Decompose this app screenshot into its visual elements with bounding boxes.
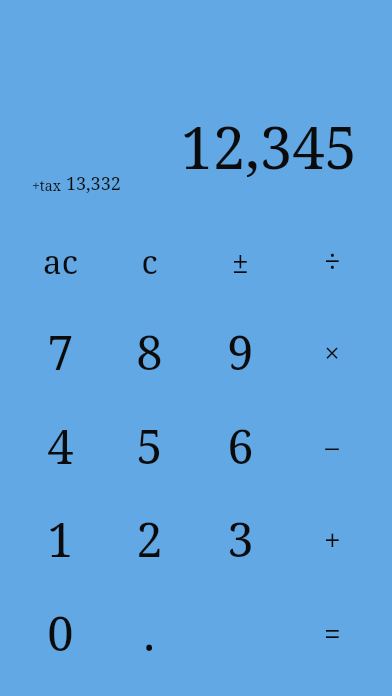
button[interactable]: 3 bbox=[196, 493, 284, 585]
button[interactable]: 5 bbox=[105, 400, 193, 492]
staticText: 12,345 bbox=[180, 107, 357, 177]
button[interactable]: Divide bbox=[288, 215, 376, 307]
staticText: × bbox=[324, 334, 340, 371]
button[interactable]: 2 bbox=[105, 493, 193, 585]
staticText: – bbox=[325, 428, 339, 465]
button[interactable]: 8 bbox=[105, 306, 193, 398]
staticText: 1 bbox=[47, 507, 74, 571]
button[interactable]: 4 bbox=[16, 400, 104, 492]
staticText: 9 bbox=[227, 320, 254, 384]
button[interactable]: All clear bbox=[16, 215, 104, 307]
staticText: + bbox=[324, 519, 341, 560]
staticText: = bbox=[324, 613, 341, 654]
button[interactable]: Subtract bbox=[288, 400, 376, 492]
staticText: 6 bbox=[227, 414, 254, 478]
staticText: 7 bbox=[47, 320, 74, 384]
staticText: 3 bbox=[227, 507, 254, 571]
staticText: 13,332 bbox=[66, 171, 121, 195]
staticText: ± bbox=[232, 241, 249, 282]
staticText: +tax bbox=[32, 176, 61, 195]
staticText: ac bbox=[43, 239, 78, 284]
button[interactable]: 0 bbox=[16, 587, 104, 679]
button[interactable]: Clear bbox=[105, 215, 193, 307]
staticText: 0 bbox=[47, 601, 74, 665]
button[interactable]: Toggle sign bbox=[196, 215, 284, 307]
button[interactable]: 9 bbox=[196, 306, 284, 398]
staticText: 2 bbox=[136, 507, 163, 571]
button[interactable]: 7 bbox=[16, 306, 104, 398]
staticText: 8 bbox=[136, 320, 163, 384]
button[interactable]: 6 bbox=[196, 400, 284, 492]
button[interactable]: Add bbox=[288, 493, 376, 585]
staticText: . bbox=[143, 601, 155, 665]
button[interactable]: Decimal point bbox=[105, 587, 193, 679]
staticText: c bbox=[141, 239, 158, 284]
button[interactable]: Equals bbox=[288, 587, 376, 679]
staticText: 4 bbox=[47, 414, 74, 478]
button[interactable]: 1 bbox=[16, 493, 104, 585]
staticText: ÷ bbox=[324, 241, 341, 282]
button[interactable]: Multiply bbox=[288, 306, 376, 398]
staticText: 5 bbox=[136, 414, 163, 478]
